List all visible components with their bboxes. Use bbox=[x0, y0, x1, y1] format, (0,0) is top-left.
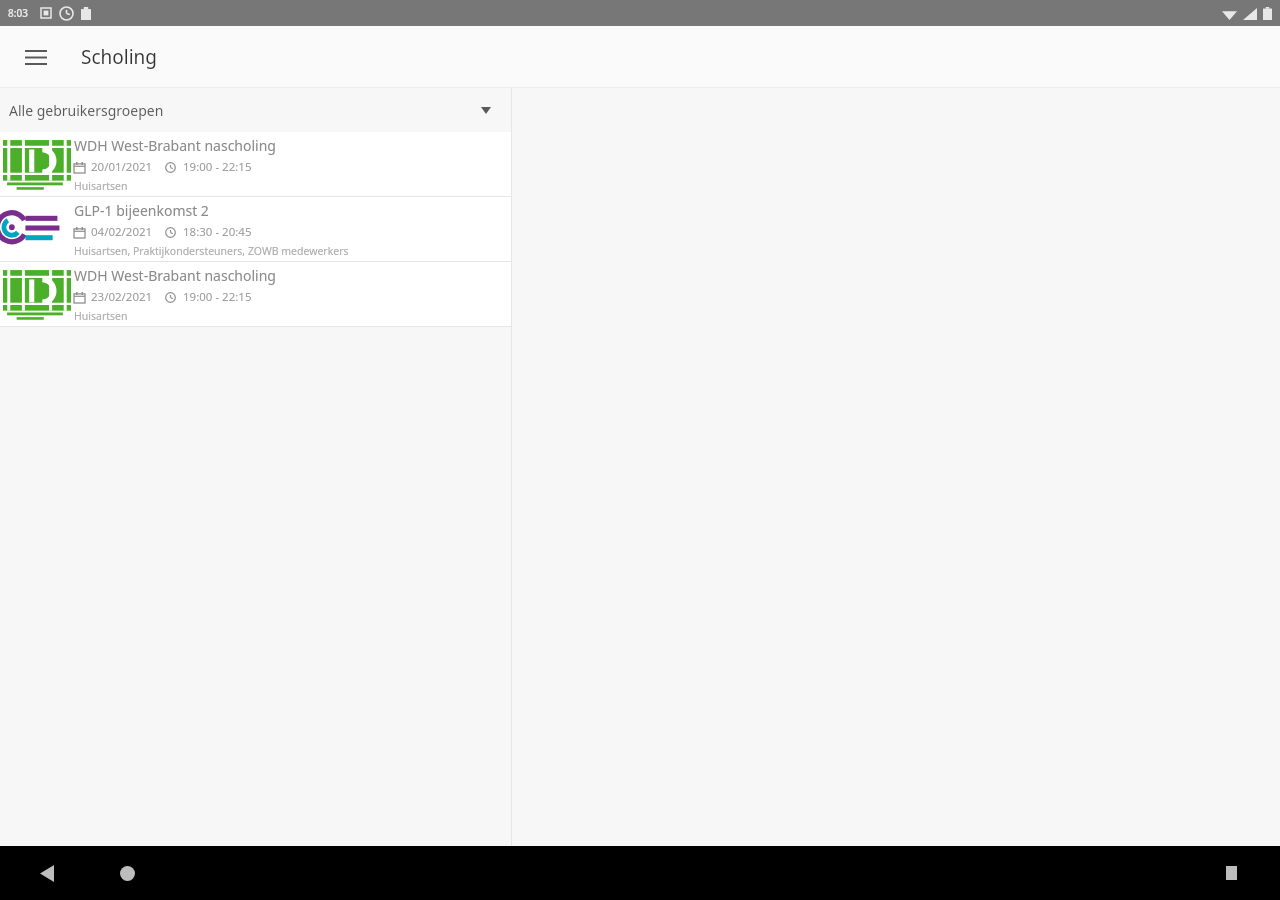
button[interactable]: Open navigation menu bbox=[14, 35, 58, 79]
staticText: Huisartsen bbox=[74, 179, 128, 193]
button[interactable]: GLP-1 bijeenkomst 2 bbox=[0, 197, 511, 261]
staticText: 19:00 - 22:15 bbox=[183, 159, 252, 175]
staticText: 19:00 - 22:15 bbox=[183, 289, 252, 305]
staticText: 20/01/2021 bbox=[91, 159, 153, 175]
button[interactable]: Home bbox=[106, 852, 148, 894]
staticText: 18:30 - 20:45 bbox=[183, 224, 252, 240]
staticText: 23/02/2021 bbox=[91, 289, 153, 305]
staticText: Scholing bbox=[81, 44, 158, 70]
staticText: WDH West-Brabant nascholing bbox=[74, 266, 276, 285]
staticText: WDH West-Brabant nascholing bbox=[74, 136, 276, 155]
button[interactable]: WDH West-Brabant nascholing bbox=[0, 132, 511, 196]
staticText: GLP-1 bijeenkomst 2 bbox=[74, 201, 209, 220]
staticText: Huisartsen, Praktijkondersteuners, ZOWB … bbox=[74, 244, 349, 258]
button[interactable]: Alle gebruikersgroepen bbox=[0, 88, 511, 132]
button[interactable]: Recent apps bbox=[1210, 852, 1252, 894]
staticText: 04/02/2021 bbox=[91, 224, 153, 240]
button[interactable]: WDH West-Brabant nascholing bbox=[0, 262, 511, 326]
button[interactable]: Back bbox=[26, 852, 68, 894]
staticText: Alle gebruikersgroepen bbox=[9, 101, 164, 120]
staticText: 8:03 bbox=[8, 6, 28, 20]
staticText: Huisartsen bbox=[74, 309, 128, 323]
